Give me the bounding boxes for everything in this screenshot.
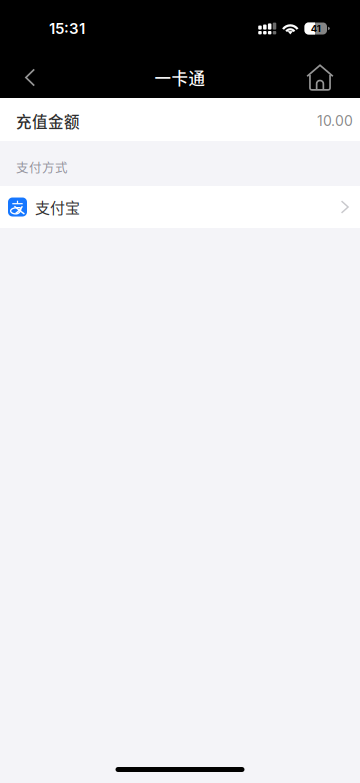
staticText: 41 (311, 23, 321, 34)
staticText: 充值金额 (16, 110, 80, 132)
button[interactable]: 支付宝 (0, 186, 360, 228)
staticText: 10.00 (317, 112, 353, 129)
button[interactable]: Back (0, 57, 55, 98)
button[interactable]: Home (293, 57, 360, 98)
staticText: 15:31 (49, 19, 85, 37)
staticText: 支付方式 (16, 158, 68, 176)
staticText: 支付宝 (35, 196, 80, 218)
staticText: 一卡通 (154, 66, 205, 89)
